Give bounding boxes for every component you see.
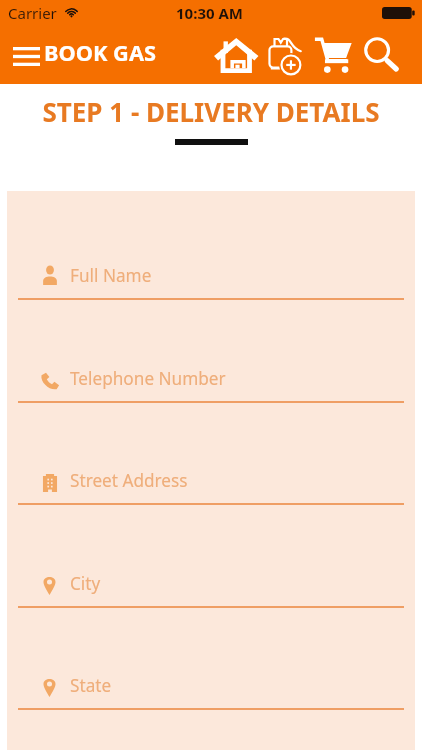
staticText: Full Name <box>70 264 152 287</box>
button[interactable]: BOOK GAS <box>13 28 158 84</box>
staticText: STEP 1 - DELIVERY DETAILS <box>42 94 380 129</box>
button[interactable]: Street Address <box>7 451 415 505</box>
button[interactable]: State <box>7 656 415 710</box>
staticText: State <box>70 674 112 697</box>
button[interactable]: Cart <box>311 30 362 82</box>
button[interactable]: Add cylinder <box>262 30 312 82</box>
button[interactable]: City <box>7 554 415 608</box>
button[interactable]: Search <box>359 30 407 82</box>
staticText: City <box>70 572 101 595</box>
staticText: Telephone Number <box>70 367 226 390</box>
staticText: 10:30 AM <box>176 3 243 23</box>
staticText: BOOK GAS <box>44 38 156 68</box>
button[interactable]: Home <box>209 30 261 82</box>
button[interactable]: Telephone Number <box>7 349 415 403</box>
staticText: Carrier <box>8 3 57 23</box>
staticText: Street Address <box>70 469 188 492</box>
button[interactable]: Full Name <box>7 246 415 300</box>
